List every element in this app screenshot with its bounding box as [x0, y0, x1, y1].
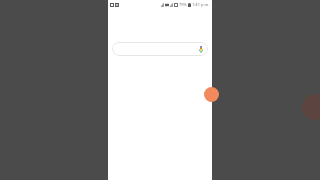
staticText: 1:41 p.m.	[192, 2, 210, 7]
button[interactable]: Chat head bubble	[204, 87, 219, 102]
staticText: 79%	[179, 2, 187, 7]
other: Search by voice	[199, 46, 203, 53]
other: Floating bubble	[302, 94, 320, 120]
button[interactable]: Search by voice	[112, 42, 208, 56]
